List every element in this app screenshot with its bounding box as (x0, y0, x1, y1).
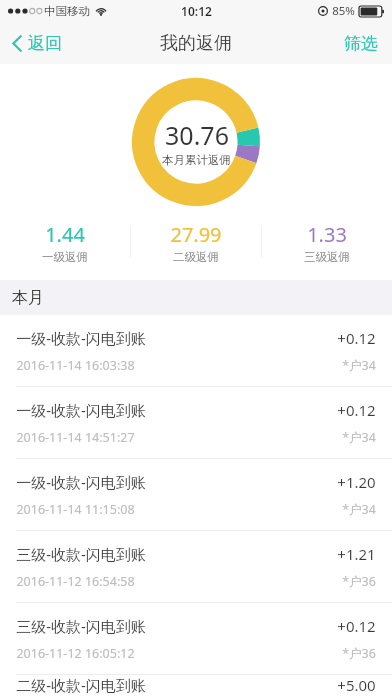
staticText: 返回 (28, 33, 62, 54)
staticText: 1.33 (307, 221, 347, 248)
staticText: *户34 (342, 501, 376, 518)
staticText: 三级-收款-闪电到账 (16, 544, 146, 564)
staticText: 85% (332, 3, 355, 19)
button[interactable]: 三级-收款-闪电到账 (0, 603, 392, 674)
staticText: 二级-收款-闪电到账 (16, 675, 146, 695)
staticText: *户34 (342, 429, 376, 446)
staticText: 我的返佣 (160, 32, 232, 55)
staticText: 2016-11-14 16:03:38 (16, 357, 135, 374)
staticText: *户36 (342, 645, 376, 662)
staticText: 2016-11-14 11:15:08 (16, 501, 135, 518)
button[interactable]: 二级-收款-闪电到账 (0, 675, 392, 696)
staticText: 10:12 (181, 3, 212, 19)
button[interactable]: 一级-收款-闪电到账 (0, 459, 392, 530)
staticText: 2016-11-14 14:51:27 (16, 429, 135, 446)
staticText: *户36 (342, 573, 376, 590)
staticText: 一级-收款-闪电到账 (16, 472, 146, 492)
staticText: 27.99 (170, 221, 222, 248)
staticText: +0.12 (337, 400, 376, 420)
staticText: 30.76 (165, 118, 229, 152)
staticText: 本月累计返佣 (162, 153, 231, 167)
button[interactable]: 27.99 (131, 221, 261, 264)
staticText: 一级返佣 (42, 250, 88, 264)
staticText: 三级-收款-闪电到账 (16, 616, 146, 636)
staticText: 中国移动 (44, 4, 90, 18)
staticText: 三级返佣 (304, 250, 350, 264)
button[interactable]: 一级-收款-闪电到账 (0, 387, 392, 458)
staticText: 1.44 (45, 221, 85, 248)
button[interactable]: 一级-收款-闪电到账 (0, 315, 392, 386)
staticText: +1.20 (337, 472, 376, 492)
staticText: +1.21 (337, 544, 376, 564)
button[interactable]: 三级-收款-闪电到账 (0, 531, 392, 602)
button[interactable]: 返回 (0, 27, 76, 60)
button[interactable]: 筛选 (330, 27, 392, 60)
staticText: *户34 (342, 357, 376, 374)
staticText: +5.00 (337, 675, 376, 695)
staticText: 筛选 (344, 33, 378, 54)
staticText: 一级-收款-闪电到账 (16, 400, 146, 420)
button[interactable]: 1.33 (262, 221, 392, 264)
staticText: +0.12 (337, 328, 376, 348)
staticText: 一级-收款-闪电到账 (16, 328, 146, 348)
staticText: +0.12 (337, 616, 376, 636)
staticText: 本月 (12, 288, 44, 308)
staticText: 2016-11-12 16:05:12 (16, 645, 135, 662)
staticText: 二级返佣 (173, 250, 219, 264)
staticText: 2016-11-12 16:54:58 (16, 573, 135, 590)
button[interactable]: 1.44 (0, 221, 130, 264)
